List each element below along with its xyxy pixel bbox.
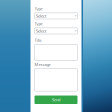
button[interactable]: Text field — [34, 69, 77, 91]
button[interactable]: Select — [34, 28, 77, 34]
staticText: Send — [52, 97, 60, 102]
staticText: Message — [34, 62, 50, 67]
button[interactable]: Text field — [34, 44, 77, 60]
staticText: ▾ — [75, 29, 76, 32]
button[interactable]: Send — [34, 95, 77, 104]
staticText: ▾ — [75, 14, 76, 17]
staticText: Type — [34, 6, 42, 11]
staticText: Select — [36, 13, 46, 19]
staticText: Select — [36, 28, 46, 34]
button[interactable]: Select — [34, 13, 77, 19]
staticText: Type — [34, 21, 42, 26]
staticText: Title — [34, 37, 41, 43]
